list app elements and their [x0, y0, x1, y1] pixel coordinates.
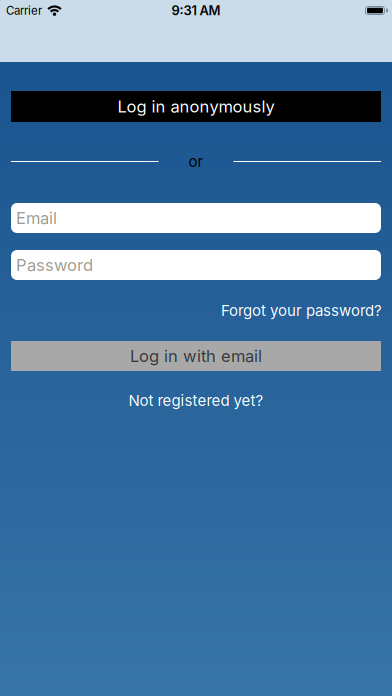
staticText: Forgot your password?: [221, 301, 382, 319]
staticText: 9:31 AM: [171, 3, 220, 18]
button[interactable]: Log in with email: [11, 341, 381, 371]
staticText: Log in with email: [130, 346, 262, 366]
secureTextField[interactable]: Password: [16, 255, 376, 275]
staticText: Email: [16, 208, 57, 228]
button[interactable]: Not registered yet?: [128, 391, 263, 409]
staticText: Carrier: [6, 4, 42, 17]
textField[interactable]: Email: [16, 208, 376, 228]
button[interactable]: Log in anonymously: [11, 91, 381, 122]
staticText: or: [188, 152, 203, 170]
button[interactable]: Forgot your password?: [221, 301, 382, 319]
staticText: Password: [16, 255, 93, 275]
staticText: Not registered yet?: [128, 391, 263, 409]
staticText: Log in anonymously: [117, 96, 274, 116]
